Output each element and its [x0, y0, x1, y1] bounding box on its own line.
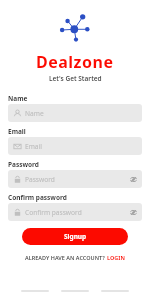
staticText: Name: [25, 109, 44, 118]
button[interactable]: Confirm password: [8, 203, 142, 221]
staticText: Confirm password: [25, 208, 82, 217]
button[interactable]: Toggle password visibility: [129, 208, 137, 216]
staticText: ALREADY HAVE AN ACCOUNT?: [25, 254, 107, 261]
staticText: Confirm password: [8, 193, 67, 202]
staticText: Email: [8, 127, 26, 136]
button[interactable]: Toggle password visibility: [129, 175, 137, 183]
staticText: Name: [8, 94, 28, 103]
staticText: Let's Get Started: [49, 74, 102, 83]
staticText: Password: [8, 160, 39, 169]
button[interactable]: Email: [8, 137, 142, 155]
button[interactable]: Password: [8, 170, 142, 188]
staticText: Signup: [64, 232, 87, 241]
button[interactable]: Signup: [22, 228, 128, 245]
button[interactable]: Name: [8, 104, 142, 122]
staticText: Email: [25, 142, 42, 151]
staticText: Dealzone: [36, 51, 114, 73]
button[interactable]: LOGIN: [107, 254, 125, 261]
staticText: LOGIN: [107, 254, 125, 261]
staticText: Password: [25, 175, 55, 184]
